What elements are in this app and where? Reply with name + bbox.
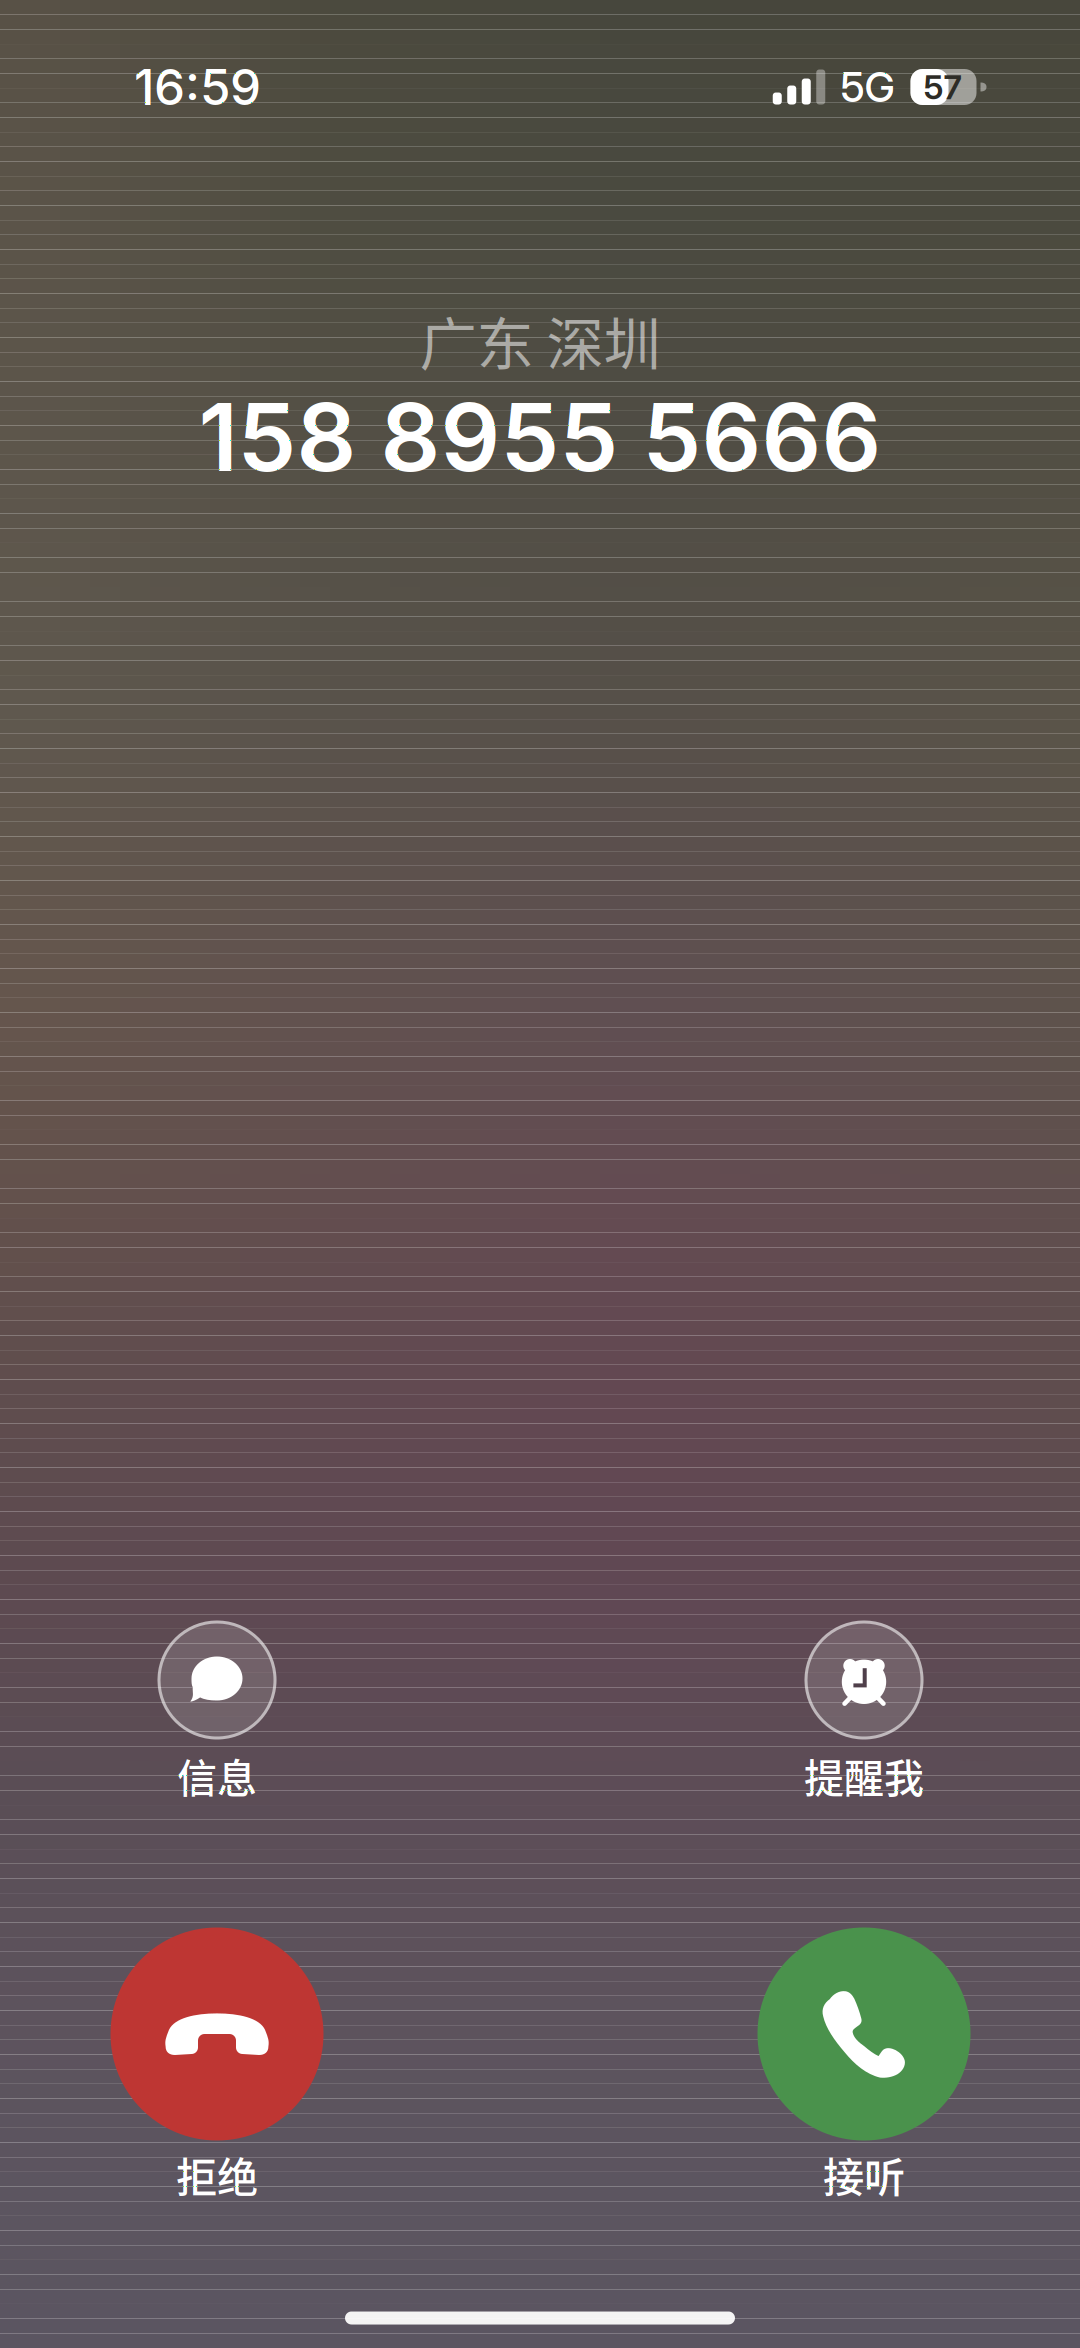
button[interactable]: Message [102,1620,332,1799]
staticText: 信息 [177,1746,257,1804]
staticText: 提醒我 [804,1746,924,1804]
staticText: 5G [840,62,894,112]
button[interactable]: 拒绝 [97,1927,337,2198]
staticText: 广东 深圳 [419,298,660,381]
button[interactable]: 接听 [744,1927,984,2198]
staticText: 158 8955 5666 [198,380,881,493]
staticText: 57 [923,67,961,107]
staticText: 拒绝 [176,2145,258,2204]
staticText: 接听 [823,2145,905,2204]
staticText: 16:59 [134,57,261,117]
button[interactable]: Remind Me [749,1620,979,1799]
